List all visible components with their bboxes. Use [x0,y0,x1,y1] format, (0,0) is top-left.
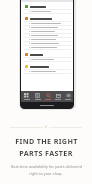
button[interactable] [23,58,71,61]
button[interactable]: Home [21,92,32,101]
button[interactable]: Catalog [32,92,43,101]
button[interactable] [23,46,71,49]
button[interactable]: Category [23,16,71,21]
staticText: FIND THE RIGHT [15,136,78,146]
button[interactable] [23,22,71,25]
button[interactable]: Menu [63,92,73,101]
other: Category [25,5,28,8]
button[interactable]: Search [43,92,53,101]
button[interactable] [23,34,71,37]
button[interactable] [23,10,71,13]
button[interactable] [23,42,71,45]
other: Category [25,17,28,20]
button[interactable] [23,30,71,33]
staticText: Real-time availability for parts deliver… [11,164,82,169]
button[interactable] [23,38,71,41]
button[interactable]: Orders [53,92,63,101]
button[interactable] [23,26,71,29]
other: Category [25,53,28,56]
staticText: PARTS FASTER [19,148,73,158]
button[interactable] [23,70,71,73]
button[interactable]: Category [23,64,71,69]
button[interactable]: Category [23,52,71,57]
button[interactable]: Category [23,4,71,9]
staticText: right to your shop. [29,171,63,176]
other: Category [25,65,28,68]
